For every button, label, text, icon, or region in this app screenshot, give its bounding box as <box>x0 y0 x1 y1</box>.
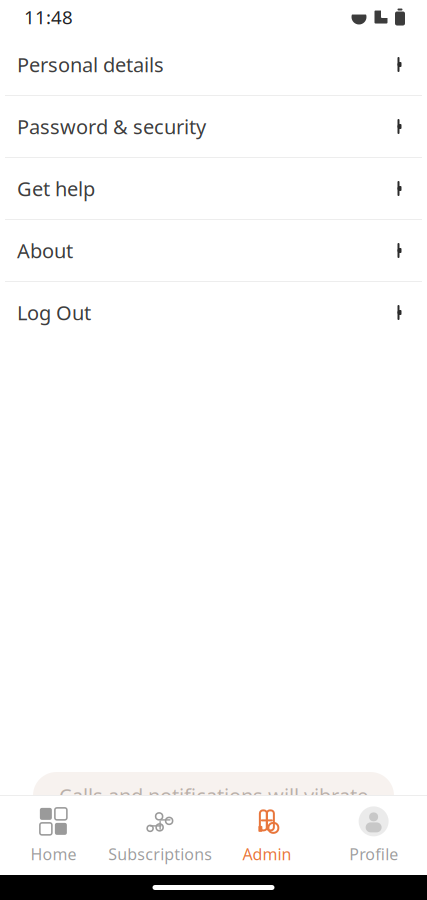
button[interactable]: Password & security <box>0 96 427 157</box>
button[interactable]: Personal details <box>0 34 427 95</box>
staticText: About <box>17 237 73 264</box>
staticText: Personal details <box>17 51 164 78</box>
staticText: Calls and notifications will vibrate <box>59 782 368 809</box>
staticText: Subscriptions <box>108 843 212 865</box>
button[interactable]: Subscriptions <box>107 796 214 875</box>
button[interactable]: About <box>0 220 427 281</box>
staticText: Home <box>30 843 76 865</box>
staticText: Log Out <box>17 299 91 326</box>
button[interactable]: Get help <box>0 158 427 219</box>
button[interactable]: Profile <box>320 796 427 875</box>
staticText: Password & security <box>17 113 206 140</box>
staticText: Get help <box>17 175 95 202</box>
staticText: 11:48 <box>24 5 73 29</box>
staticText: Admin <box>242 843 291 865</box>
button[interactable]: Home <box>0 796 107 875</box>
staticText: Profile <box>349 843 398 865</box>
button[interactable]: Log Out <box>0 282 427 343</box>
button[interactable]: Admin <box>213 796 320 875</box>
